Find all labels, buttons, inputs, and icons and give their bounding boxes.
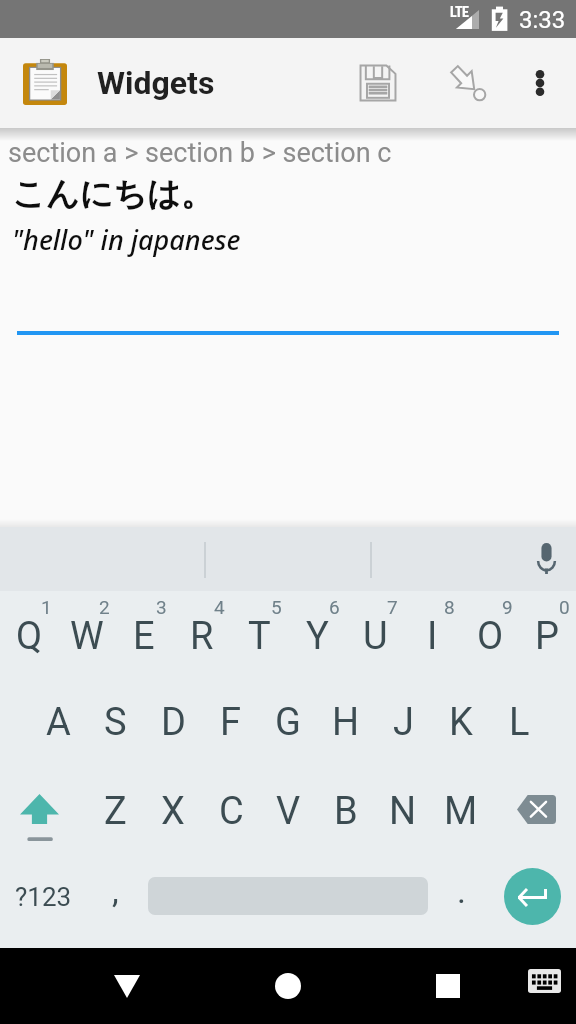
button[interactable]: W [58,596,116,677]
staticText: LTE [450,4,469,20]
staticText: 6 [329,596,340,618]
staticText: . [457,871,466,911]
button[interactable]: Switch keyboard [519,956,569,1006]
button[interactable]: Enter [490,852,576,941]
button[interactable]: More options [517,60,563,106]
button[interactable]: A [29,678,87,767]
staticText: Widgets [97,64,215,102]
staticText: K [449,700,473,745]
staticText: 9 [502,596,513,618]
button[interactable]: F [202,678,260,767]
button[interactable]: ?123 [0,852,86,941]
staticText: 3 [156,596,167,618]
button[interactable]: G [259,678,317,767]
staticText: B [334,789,358,834]
button[interactable]: V [259,767,317,856]
button[interactable]: Home [258,956,318,1016]
button[interactable]: Q [0,596,58,677]
button[interactable]: I [403,596,461,677]
button[interactable]: H [317,678,375,767]
staticText: O [477,614,504,659]
button[interactable]: Y [288,596,346,677]
button[interactable]: C [202,767,260,856]
staticText: 1 [41,596,52,618]
button[interactable]: X [144,767,202,856]
staticText: X [161,789,185,834]
button[interactable]: Z [86,767,144,856]
button[interactable]: B [317,767,375,856]
staticText: S [104,700,127,745]
staticText: 4 [214,596,225,618]
button[interactable]: P [518,596,576,677]
button[interactable]: J [374,678,432,767]
staticText: L [509,700,530,745]
staticText: こんにちは。 [12,173,214,215]
button[interactable]: Back [97,956,157,1016]
button[interactable]: . [432,852,490,941]
button[interactable]: Shift [0,767,86,856]
staticText: 7 [387,596,398,618]
staticText: M [444,789,478,834]
button[interactable]: D [144,678,202,767]
staticText: E [133,614,155,659]
staticText: H [332,700,360,745]
staticText: T [248,614,271,659]
button[interactable]: L [490,678,548,767]
button[interactable]: , [86,852,144,941]
staticText: U [363,614,388,659]
staticText: A [46,700,71,745]
staticText: N [389,789,417,834]
staticText: , [112,871,119,911]
staticText: G [275,700,301,745]
staticText: C [219,789,244,834]
staticText: "hello" in japanese [12,221,241,258]
staticText: V [276,789,301,834]
staticText: Q [16,614,43,659]
button[interactable]: M [432,767,490,856]
button[interactable]: Backspace [490,767,576,856]
staticText: 2 [99,596,110,618]
staticText: ?123 [15,882,72,912]
staticText: 3:33 [519,6,566,34]
staticText: J [393,700,414,745]
button[interactable]: O [461,596,519,677]
button[interactable]: E [115,596,173,677]
button[interactable]: U [346,596,404,677]
staticText: D [161,700,186,745]
staticText: 0 [559,596,570,618]
staticText: W [70,614,104,659]
staticText: R [190,614,214,659]
button[interactable]: Voice input [518,530,575,587]
button[interactable]: Space [144,852,432,941]
button[interactable]: Recents [418,956,478,1016]
button[interactable]: N [374,767,432,856]
staticText: I [427,614,438,659]
button[interactable]: K [432,678,490,767]
staticText: P [535,614,559,659]
staticText: 5 [271,596,282,618]
button[interactable]: Pointer tool [442,57,498,113]
staticText: section a > section b > section c [8,137,392,169]
staticText: Y [306,614,329,659]
staticText: Z [104,789,127,834]
button[interactable]: R [173,596,231,677]
staticText: F [220,700,242,745]
button[interactable]: S [86,678,144,767]
button[interactable]: T [230,596,288,677]
staticText: 8 [444,596,455,618]
button[interactable]: Save [350,55,406,111]
